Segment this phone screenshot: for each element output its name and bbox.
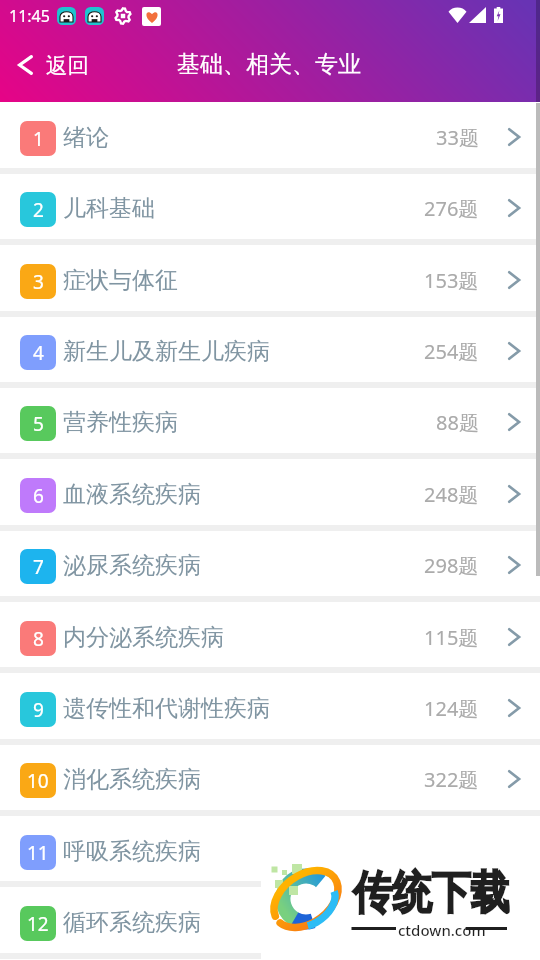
staticText: 153题 <box>424 267 479 294</box>
button[interactable]: 9 <box>0 673 540 739</box>
button[interactable]: 1 <box>0 102 540 168</box>
staticText: 传统下载 <box>353 865 510 922</box>
button[interactable]: 3 <box>0 245 540 311</box>
staticText: 内分泌系统疾病 <box>63 623 224 652</box>
staticText: 消化系统疾病 <box>63 765 201 794</box>
staticText: 5 <box>33 411 44 437</box>
staticText: 11:45 <box>9 5 50 27</box>
staticText: 2 <box>33 197 44 223</box>
staticText: 症状与体征 <box>63 266 178 295</box>
staticText: 8 <box>33 626 44 652</box>
button[interactable]: 返回 <box>0 39 99 91</box>
staticText: 泌尿系统疾病 <box>63 551 201 580</box>
staticText: 循环系统疾病 <box>63 908 201 937</box>
staticText: 基础、相关、专业 <box>177 50 361 79</box>
staticText: 180题 <box>424 909 479 936</box>
staticText: 新生儿及新生儿疾病 <box>63 337 270 366</box>
staticText: 248题 <box>424 481 479 508</box>
staticText: 返回 <box>46 52 89 79</box>
staticText: 11 <box>27 840 49 866</box>
staticText: 营养性疾病 <box>63 408 178 437</box>
staticText: 呼吸系统疾病 <box>63 837 201 866</box>
staticText: 7 <box>33 554 44 580</box>
staticText: 儿科基础 <box>63 194 155 223</box>
button[interactable]: 10 <box>0 744 540 810</box>
staticText: 6 <box>33 483 44 509</box>
button[interactable]: 6 <box>0 459 540 525</box>
button[interactable]: 8 <box>0 602 540 668</box>
staticText: 绪论 <box>63 123 109 152</box>
staticText: 254题 <box>424 338 479 365</box>
staticText: 血液系统疾病 <box>63 480 201 509</box>
staticText: 33题 <box>436 124 479 151</box>
staticText: 12 <box>27 911 49 937</box>
staticText: 9 <box>33 697 44 723</box>
staticText: ctdown.com <box>398 920 486 940</box>
staticText: 298题 <box>424 552 479 579</box>
button[interactable]: 2 <box>0 173 540 239</box>
staticText: 3 <box>33 269 44 295</box>
staticText: 遗传性和代谢性疾病 <box>63 694 270 723</box>
staticText: 124题 <box>424 695 479 722</box>
staticText: 276题 <box>424 195 479 222</box>
button[interactable]: 11 <box>0 816 540 882</box>
staticText: 4 <box>33 340 44 366</box>
staticText: 322题 <box>424 766 479 793</box>
staticText: 88题 <box>436 409 479 436</box>
staticText: 10 <box>27 768 49 794</box>
staticText: 115题 <box>424 624 479 651</box>
button[interactable]: 7 <box>0 530 540 596</box>
button[interactable]: 12 <box>0 887 540 953</box>
staticText: 1 <box>33 126 44 152</box>
button[interactable]: 4 <box>0 316 540 382</box>
button[interactable]: 5 <box>0 387 540 453</box>
